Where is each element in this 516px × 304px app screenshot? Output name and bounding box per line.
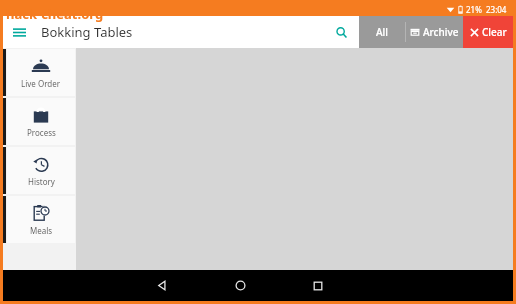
staticText: 23:04 [486,4,507,15]
button[interactable]: Clear [463,16,513,48]
staticText: All [376,25,388,39]
button[interactable]: Search [325,16,357,48]
staticText: 21% [466,4,482,15]
button[interactable]: Open navigation menu [3,16,35,48]
button[interactable]: All [359,16,405,48]
staticText: Process [27,127,56,138]
button[interactable]: Recent apps [301,270,335,301]
button[interactable]: History [3,146,76,195]
button[interactable]: Back [145,270,179,301]
button[interactable]: Process [3,97,76,146]
staticText: History [28,176,55,187]
button[interactable]: Home [223,270,257,301]
button[interactable]: Archive [406,16,463,48]
staticText: hack-cheat.org [6,5,104,23]
button[interactable]: Live Order [3,48,76,97]
staticText: Meals [30,225,53,236]
staticText: Archive [423,25,459,39]
staticText: Clear [482,25,507,39]
staticText: Bokking Tables [41,23,133,41]
button[interactable]: Meals [3,195,76,244]
staticText: Live Order [21,78,61,89]
